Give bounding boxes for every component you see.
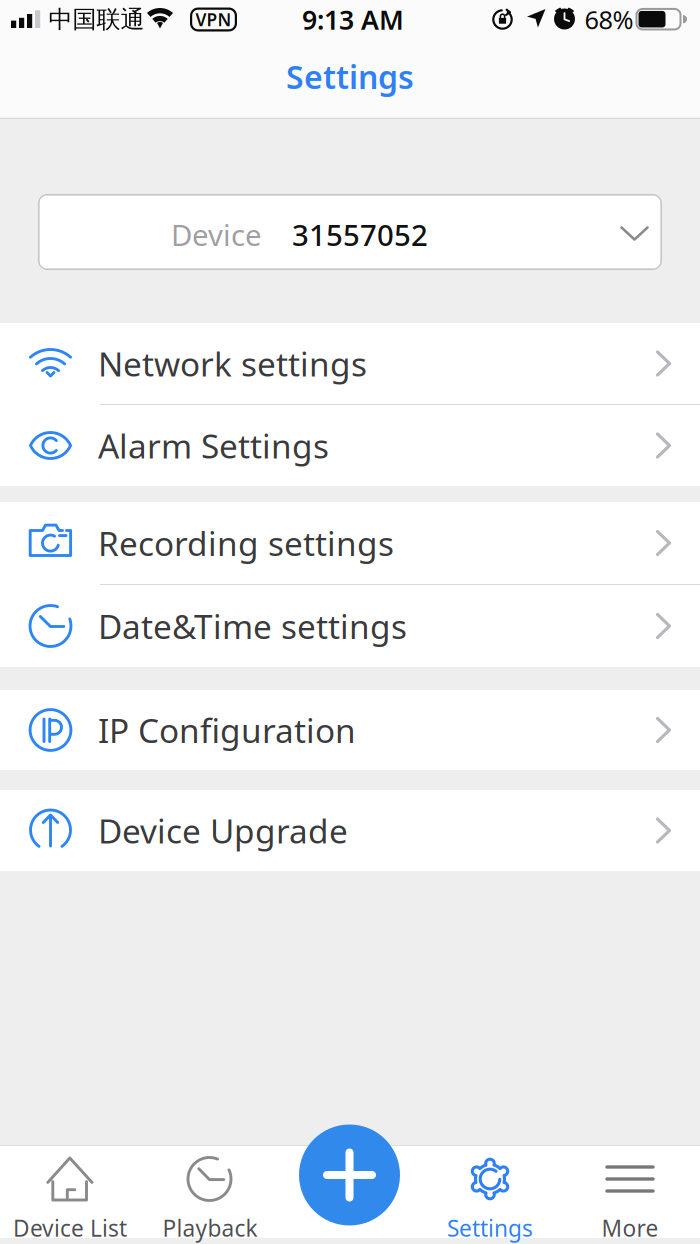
button[interactable]: Device List [0,1145,140,1244]
staticText: Recording settings [98,521,394,565]
button[interactable]: Date&Time settings [0,585,700,667]
staticText: Device [171,215,262,254]
staticText: 9:13 AM [302,2,404,37]
button[interactable]: Device Upgrade [0,790,700,871]
staticText: Network settings [98,341,367,386]
staticText: IP Configuration [98,708,356,752]
button[interactable]: Add Device [299,1124,400,1225]
button[interactable]: Playback [140,1145,280,1244]
staticText: Date&Time settings [98,604,407,648]
button[interactable]: Alarm Settings [0,405,700,486]
staticText: Playback [162,1213,257,1243]
staticText: VPN [195,8,231,31]
button[interactable]: Settings [420,1145,560,1244]
staticText: Device Upgrade [98,808,348,853]
staticText: 31557052 [292,215,428,254]
button[interactable]: Network settings [0,323,700,404]
staticText: Settings [286,55,414,98]
button[interactable]: Recording settings [0,502,700,584]
staticText: 中国联通 [48,5,144,34]
staticText: More [601,1213,658,1243]
button[interactable]: IP Configuration [0,690,700,770]
staticText: Alarm Settings [98,423,329,468]
staticText: 68% [584,3,633,36]
staticText: Device List [13,1213,127,1243]
button[interactable]: More [560,1145,700,1244]
staticText: Settings [447,1213,533,1243]
button[interactable]: Device [38,194,662,270]
